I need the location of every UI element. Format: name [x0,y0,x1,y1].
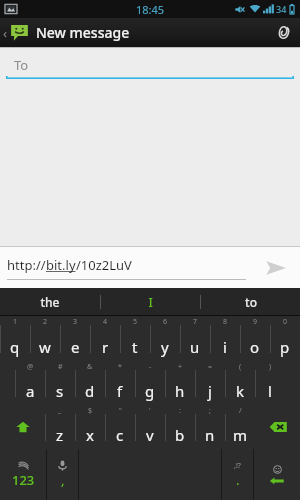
staticText: bit.ly [46,256,76,274]
button[interactable]: 0 [270,316,300,361]
staticText: . [236,471,240,489]
staticText: 7 [193,317,198,327]
staticText: s [56,381,64,401]
staticText: t [132,337,138,357]
button[interactable]: $ [75,405,105,449]
button[interactable]: & [75,361,105,405]
staticText: f [117,381,123,401]
staticText: 123 [12,471,35,489]
staticText: k [236,381,245,401]
staticText: * [118,362,122,372]
button[interactable]: _ [45,405,75,449]
button[interactable]: ; [195,405,225,449]
staticText: ,!? [234,461,241,471]
button[interactable]: @ [15,361,45,405]
button[interactable]: To [6,54,294,79]
staticText: 3 [73,317,78,327]
staticText: v [146,425,154,445]
button[interactable]: ) [255,361,285,405]
staticText: 5 [133,317,138,327]
button[interactable]: Backspace [255,405,300,449]
staticText: " [119,406,122,416]
staticText: /10z2LuV [76,256,132,274]
staticText: : [179,406,181,416]
staticText: I [148,294,153,310]
staticText: To [14,56,29,74]
button[interactable]: Voice input [47,449,78,500]
button[interactable]: 2 [30,316,60,361]
button[interactable]: ,!? [222,449,253,500]
staticText: New message [36,23,130,42]
button[interactable]: 5 [120,316,150,361]
staticText: ( [239,362,242,372]
staticText: g [145,381,155,401]
button[interactable]: 4 [90,316,120,361]
staticText: / [239,406,242,416]
staticText: 2 [43,317,48,327]
button[interactable]: ( [225,361,255,405]
button[interactable]: / [225,405,255,449]
button[interactable]: 1 [0,316,30,361]
staticText: _ [58,406,62,416]
button[interactable]: 3 [60,316,90,361]
button[interactable]: Shift [0,405,45,449]
button[interactable]: to [201,288,300,315]
staticText: 4 [103,317,108,327]
button[interactable]: Attach [266,18,300,47]
staticText: j [208,381,212,401]
staticText: h [175,381,185,401]
staticText: n [205,425,215,445]
button[interactable]: ' [135,405,165,449]
staticText: w [39,337,51,357]
button[interactable]: * [105,361,135,405]
staticText: @ [27,362,34,372]
button[interactable]: http:// [7,256,252,280]
staticText: - [149,362,152,372]
staticText: to [245,294,257,310]
staticText: 8 [223,317,228,327]
button[interactable]: I [101,288,200,315]
staticText: 0 [283,317,288,327]
staticText: p [280,337,290,357]
button[interactable]: : [165,405,195,449]
staticText: b [175,425,185,445]
staticText: c [116,425,124,445]
button[interactable]: # [45,361,75,405]
staticText: # [58,362,63,372]
staticText: y [161,337,169,357]
staticText: z [56,425,64,445]
button[interactable]: " [105,405,135,449]
staticText: d [85,381,95,401]
staticText: 18:45 [136,2,165,17]
staticText: ) [269,362,272,372]
button[interactable]: the [0,288,100,315]
staticText: the [40,294,60,310]
button[interactable]: Up [0,23,31,42]
staticText: l [268,381,272,401]
button[interactable]: + [165,361,195,405]
staticText: http:// [7,256,46,274]
button[interactable]: Symbols [0,449,46,500]
button[interactable]: Enter [254,449,300,500]
button[interactable]: Send [252,247,300,288]
staticText: a [26,381,35,401]
staticText: $ [88,406,93,416]
staticText: 34 [276,3,287,15]
staticText: , [61,471,65,489]
button[interactable]: 6 [150,316,180,361]
button[interactable]: = [195,361,225,405]
button[interactable]: 9 [240,316,270,361]
button[interactable]: 8 [210,316,240,361]
button[interactable]: - [135,361,165,405]
staticText: 9 [253,317,258,327]
staticText: i [223,337,227,357]
staticText: = [208,362,213,372]
staticText: q [10,337,20,357]
button[interactable]: 7 [180,316,210,361]
staticText: o [250,337,260,357]
staticText: x [86,425,94,445]
staticText: e [71,337,80,357]
staticText: m [233,425,248,445]
staticText: ‹ [3,24,8,42]
